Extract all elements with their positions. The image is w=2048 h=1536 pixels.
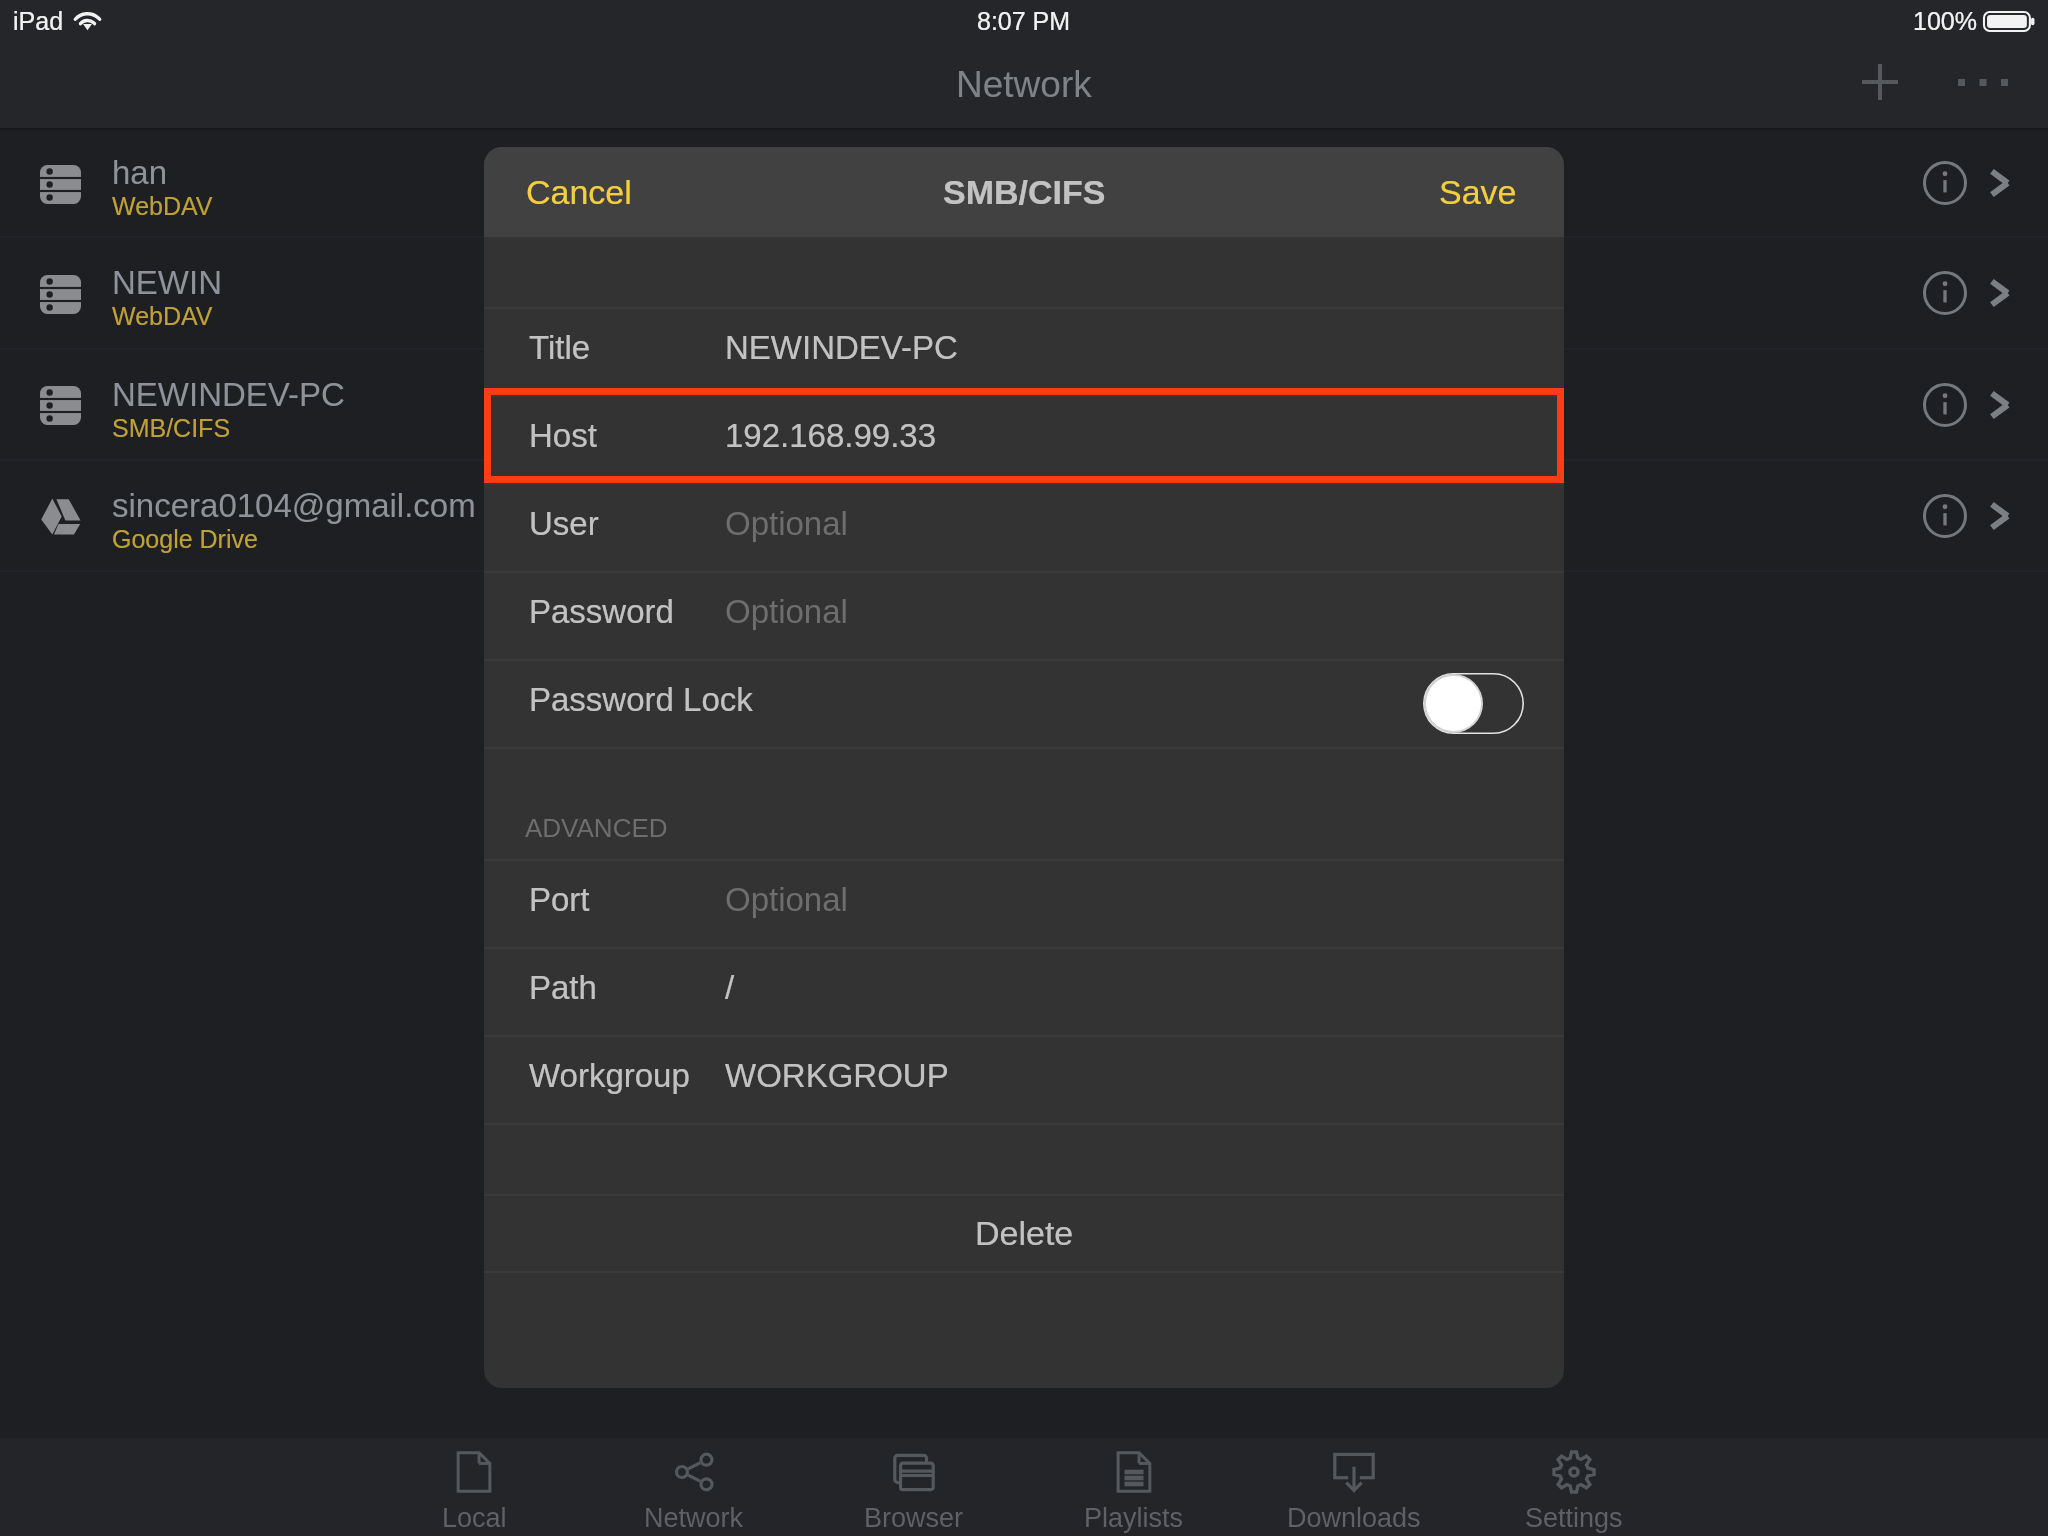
button[interactable]: Info	[1914, 476, 1976, 556]
staticText: han	[112, 154, 168, 191]
staticText: WebDAV	[112, 192, 213, 220]
staticText: Password Lock	[529, 681, 1423, 718]
staticText: Network	[956, 64, 1092, 105]
button[interactable]: Cancel	[484, 147, 662, 237]
staticText: Downloads	[1287, 1503, 1421, 1533]
staticText: Optional	[725, 881, 848, 918]
button[interactable]: Workgroup	[484, 1035, 1564, 1123]
staticText: Cancel	[526, 173, 632, 211]
staticText: NEWINDEV-PC	[112, 376, 345, 413]
button[interactable]: Settings	[1464, 1438, 1684, 1536]
staticText: Save	[1439, 173, 1517, 211]
button[interactable]: NEWINDEV-PC	[0, 350, 2048, 459]
button[interactable]: Save	[1409, 147, 1564, 237]
staticText: iPad	[13, 7, 64, 35]
button[interactable]: Add server	[1843, 45, 1917, 119]
staticText: WebDAV	[112, 302, 213, 330]
staticText: User	[529, 505, 599, 542]
staticText: Title	[529, 329, 591, 366]
staticText: Port	[529, 881, 590, 918]
staticText: Delete	[975, 1214, 1074, 1252]
staticText: 100%	[1913, 7, 1977, 35]
button[interactable]: Host	[484, 395, 1564, 483]
staticText: SMB/CIFS	[112, 414, 231, 442]
button[interactable]: Network	[584, 1438, 804, 1536]
button[interactable]: Path	[484, 947, 1564, 1035]
staticText: WORKGROUP	[725, 1057, 949, 1094]
button[interactable]: More options	[1946, 45, 2020, 119]
staticText: 192.168.99.33	[725, 417, 937, 454]
staticText: Settings	[1525, 1503, 1623, 1533]
button[interactable]: Playlists	[1024, 1438, 1244, 1536]
button[interactable]: Password Lock toggle	[1423, 673, 1524, 734]
staticText: Optional	[725, 593, 848, 630]
staticText: Host	[529, 417, 597, 454]
staticText: NEWINDEV-PC	[725, 329, 958, 366]
staticText: Browser	[864, 1503, 964, 1533]
staticText: Playlists	[1084, 1503, 1184, 1533]
button[interactable]: Password	[484, 571, 1564, 659]
staticText: Path	[529, 969, 597, 1006]
staticText: Optional	[725, 505, 848, 542]
staticText: Google Drive	[112, 525, 258, 553]
button[interactable]: han	[0, 130, 2048, 236]
button[interactable]: sincera0104@gmail.com	[0, 461, 2048, 570]
staticText: 8:07 PM	[977, 7, 1071, 35]
staticText: Workgroup	[529, 1057, 690, 1094]
staticText: NEWIN	[112, 264, 222, 301]
staticText: ADVANCED	[525, 813, 668, 842]
staticText: sincera0104@gmail.com	[112, 487, 476, 524]
button[interactable]: User	[484, 483, 1564, 571]
staticText: SMB/CIFS	[943, 173, 1106, 211]
button[interactable]: Info	[1914, 365, 1976, 445]
staticText: /	[725, 969, 735, 1006]
button[interactable]: Delete	[484, 1194, 1564, 1271]
staticText: Local	[442, 1503, 507, 1533]
staticText: Network	[644, 1503, 744, 1533]
button[interactable]: Local	[364, 1438, 584, 1536]
button[interactable]: Password Lock	[484, 659, 1564, 747]
staticText: Password	[529, 593, 674, 630]
button[interactable]: NEWIN	[0, 238, 2048, 348]
button[interactable]: Info	[1914, 143, 1976, 223]
button[interactable]: Downloads	[1244, 1438, 1464, 1536]
button[interactable]: Info	[1914, 253, 1976, 333]
button[interactable]: Browser	[804, 1438, 1024, 1536]
button[interactable]: Port	[484, 859, 1564, 947]
button[interactable]: Title	[484, 307, 1564, 395]
